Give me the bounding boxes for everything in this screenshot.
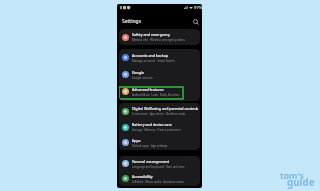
staticText: 97% <box>194 5 202 10</box>
button[interactable]: Safety and emergency <box>119 29 200 45</box>
staticText: Settings <box>122 18 142 25</box>
staticText: Advanced features <box>132 87 164 92</box>
staticText: General management <box>132 159 170 164</box>
button[interactable]: Google <box>119 66 200 83</box>
staticText: tom's <box>280 170 304 182</box>
staticText: Battery and device care <box>132 122 172 127</box>
staticText: Storage · Memory · Device protection <box>132 128 181 132</box>
button[interactable]: Advanced features <box>119 83 200 100</box>
staticText: Android Auto · Labs · Bixby Routines <box>132 93 180 97</box>
button[interactable]: Apps <box>119 135 200 150</box>
staticText: Default apps · App settings <box>132 144 168 148</box>
staticText: Accessibility <box>132 174 153 179</box>
button[interactable]: Accounts and backup <box>119 49 200 66</box>
staticText: Safety and emergency <box>132 32 170 37</box>
staticText: Medical info · Wireless emergency alerts <box>132 38 185 42</box>
button[interactable]: General management <box>119 156 200 171</box>
staticText: Google <box>132 70 145 75</box>
staticText: Screen time · App timers · Bedtime mode <box>132 112 186 116</box>
staticText: Language and keyboard · Date and time <box>132 165 185 169</box>
staticText: Google services <box>132 76 153 80</box>
staticText: Manage accounts · Smart Switch <box>132 59 175 63</box>
staticText: Apps <box>132 138 141 143</box>
button[interactable]: Accessibility <box>119 171 200 186</box>
button[interactable]: Battery and device care <box>119 119 200 135</box>
staticText: Digital Wellbeing and parental controls <box>132 106 199 111</box>
staticText: TalkBack · Mono audio · Assistant menu <box>132 180 184 184</box>
staticText: guide <box>287 176 315 189</box>
button[interactable]: Search <box>191 17 200 26</box>
staticText: Accounts and backup <box>132 53 169 58</box>
button[interactable]: Digital Wellbeing and parental controls <box>119 103 200 119</box>
